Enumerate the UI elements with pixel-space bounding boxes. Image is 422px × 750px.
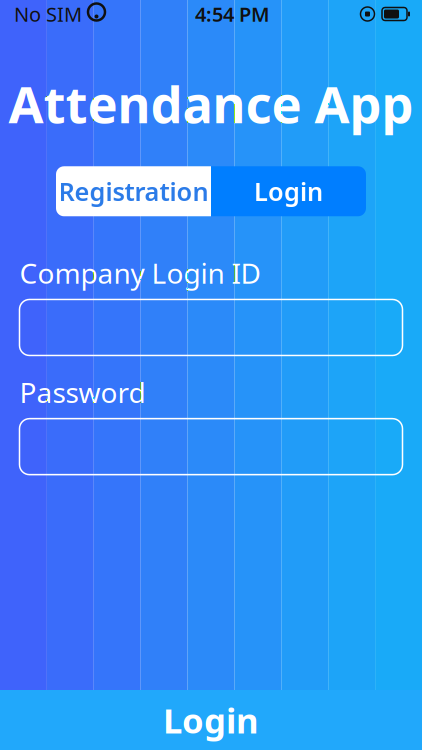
button[interactable]: Password	[19, 419, 402, 475]
button[interactable]: Login	[211, 166, 366, 216]
staticText: Registration	[58, 174, 208, 208]
button[interactable]: Registration	[56, 166, 211, 216]
button[interactable]: Login	[0, 690, 422, 750]
staticText: Login	[163, 697, 259, 743]
staticText: No SIM	[14, 1, 82, 27]
staticText: Login	[254, 174, 323, 208]
button[interactable]: Company Login ID	[19, 299, 402, 355]
staticText: Password	[19, 373, 145, 411]
staticText: Company Login ID	[19, 254, 260, 291]
staticText: 4:54 PM	[195, 1, 270, 27]
staticText: Attendance App	[8, 70, 413, 137]
